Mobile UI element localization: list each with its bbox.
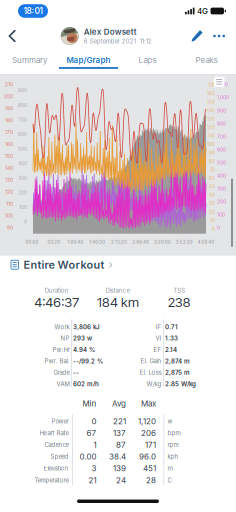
staticText: 130: [5, 177, 13, 183]
staticText: 140: [207, 108, 215, 113]
staticText: 1,120: [138, 416, 156, 426]
staticText: 4.94 %: [73, 346, 95, 353]
staticText: Alex Dowsett: [84, 27, 137, 37]
staticText: 3: [91, 464, 96, 473]
staticText: 2,874 m: [165, 357, 190, 365]
staticText: IF: [155, 323, 161, 331]
staticText: 70: [210, 167, 215, 172]
staticText: 50: [209, 184, 215, 189]
staticText: Elevation: [43, 465, 68, 472]
staticText: Duration: [45, 287, 69, 294]
staticText: 171: [145, 440, 156, 450]
staticText: Cadence: [44, 441, 68, 448]
staticText: 700: [18, 117, 27, 123]
button[interactable]: More options: [206, 28, 232, 44]
staticText: 0.71: [165, 323, 178, 331]
staticText: 1: [93, 440, 96, 450]
staticText: kph: [167, 453, 178, 460]
staticText: 800: [18, 102, 27, 108]
button[interactable]: Map/Graph: [59, 50, 118, 74]
staticText: ›: [108, 258, 112, 271]
staticText: 110: [208, 133, 215, 139]
staticText: 150: [207, 100, 215, 105]
staticText: 90: [209, 150, 215, 156]
staticText: 1,100: [217, 82, 228, 87]
staticText: 400: [217, 173, 226, 179]
staticText: 120: [207, 125, 215, 130]
button[interactable]: Entire Workout: [0, 256, 236, 274]
staticText: 900: [217, 108, 226, 113]
staticText: Map/Graph: [66, 55, 110, 65]
staticText: 4G: [197, 6, 208, 16]
staticText: 28: [146, 475, 156, 485]
staticText: 170: [208, 83, 215, 88]
staticText: w: [167, 418, 172, 425]
staticText: 2.14: [165, 346, 177, 353]
staticText: 3,806 kJ: [73, 323, 100, 331]
staticText: 139: [113, 464, 126, 473]
button[interactable]: Chart legend: [214, 77, 224, 87]
staticText: 2:13:20: [111, 240, 127, 245]
staticText: 24: [116, 475, 126, 485]
staticText: 602 m/h: [73, 380, 99, 388]
staticText: VI: [155, 335, 161, 342]
staticText: Heart Rate: [39, 429, 68, 437]
staticText: 300: [217, 186, 226, 192]
button[interactable]: Edit workout: [188, 24, 206, 47]
staticText: --: [73, 369, 79, 376]
staticText: 4:46:37: [34, 294, 79, 310]
staticText: 293 w: [73, 335, 92, 342]
button[interactable]: Peaks: [177, 50, 236, 74]
staticText: 3:53:20: [176, 240, 193, 245]
staticText: 20: [209, 210, 215, 215]
staticText: 200: [217, 199, 226, 205]
staticText: 21: [88, 475, 96, 485]
staticText: Pwr. Bal.: [44, 357, 69, 365]
staticText: 0: [24, 219, 27, 225]
staticText: 90: [7, 225, 13, 231]
staticText: 200: [4, 94, 13, 99]
staticText: 600: [18, 131, 27, 137]
staticText: 0: [217, 225, 220, 231]
staticText: 3:20:00: [154, 240, 171, 245]
staticText: 2,875 m: [165, 369, 190, 376]
staticText: --/99.2 %: [73, 357, 103, 365]
staticText: 140: [5, 165, 13, 171]
staticText: 180: [5, 117, 13, 123]
staticText: VAM: [56, 380, 69, 388]
staticText: 0.00: [79, 452, 96, 461]
staticText: 130: [207, 116, 215, 122]
staticText: Power: [51, 418, 68, 425]
staticText: Distance: [105, 287, 130, 294]
staticText: 100: [217, 212, 225, 218]
button[interactable]: Laps: [118, 50, 177, 74]
staticText: Speed: [50, 453, 68, 460]
staticText: Peaks: [195, 55, 217, 65]
staticText: Avg: [112, 399, 126, 408]
staticText: 60: [209, 176, 215, 181]
button[interactable]: Summary: [0, 50, 59, 74]
staticText: 451: [143, 464, 156, 473]
staticText: 221: [113, 416, 126, 426]
staticText: 00:00: [25, 240, 38, 245]
staticText: 400: [18, 161, 27, 166]
staticText: Max: [141, 399, 156, 408]
staticText: 700: [217, 134, 226, 140]
staticText: 38.4: [109, 452, 126, 461]
staticText: NP: [60, 335, 69, 342]
staticText: Laps: [138, 55, 156, 65]
staticText: 0: [91, 416, 96, 426]
staticText: 1.33: [165, 335, 178, 342]
button[interactable]: Back: [0, 25, 24, 47]
staticText: Temperature: [34, 477, 68, 484]
staticText: 184 km: [97, 294, 139, 310]
staticText: 160: [5, 141, 13, 147]
staticText: 40: [209, 193, 215, 198]
staticText: Work: [54, 323, 69, 331]
staticText: 160: [207, 91, 215, 96]
staticText: Pw:Hr: [52, 346, 69, 353]
staticText: 900: [18, 88, 27, 93]
staticText: 0: [212, 226, 215, 232]
staticText: 10: [210, 218, 215, 223]
staticText: Summary: [12, 55, 47, 65]
